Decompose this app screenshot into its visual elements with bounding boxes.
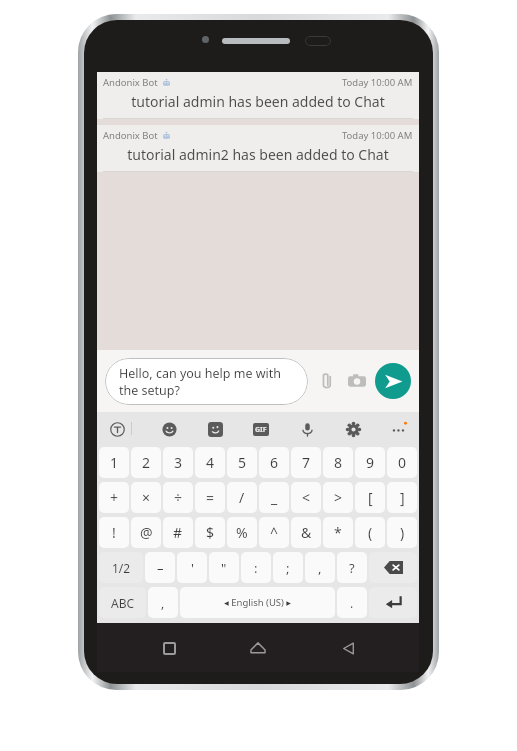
staticText: / [239, 488, 245, 507]
button[interactable]: [ [355, 482, 385, 513]
button[interactable]: 7 [291, 447, 321, 478]
staticText: 1 [110, 453, 119, 472]
button[interactable]: < [291, 482, 321, 513]
staticText: ' [191, 559, 194, 577]
button[interactable]: ] [387, 482, 417, 513]
staticText: Andonix Bot [103, 129, 158, 142]
staticText: + [110, 488, 119, 507]
button[interactable]: Camera [344, 368, 370, 394]
button[interactable]: ; [273, 552, 303, 583]
button[interactable]: Home [240, 630, 276, 666]
staticText: @ [140, 523, 153, 542]
button[interactable]: ◂ English (US) ▸ [180, 587, 335, 618]
button[interactable]: + [99, 482, 129, 513]
staticText: " [221, 559, 227, 577]
button[interactable]: ? [337, 552, 367, 583]
button[interactable]: 6 [259, 447, 289, 478]
button[interactable]: 1 [99, 447, 129, 478]
button[interactable]: Voice input [297, 419, 317, 439]
button[interactable]: 2 [131, 447, 161, 478]
staticText: ? [349, 559, 355, 577]
button[interactable]: % [227, 517, 257, 548]
button[interactable]: : [241, 552, 271, 583]
button[interactable]: × [131, 482, 161, 513]
staticText: 4 [206, 453, 215, 472]
button[interactable]: 0 [387, 447, 417, 478]
button[interactable]: # [163, 517, 193, 548]
staticText: : [254, 559, 258, 577]
staticText: 8 [334, 453, 343, 472]
staticText: 3 [174, 453, 183, 472]
button[interactable]: Backspace [369, 552, 417, 583]
button[interactable]: Enter [369, 587, 417, 618]
staticText: = [206, 488, 215, 507]
button[interactable]: = [195, 482, 225, 513]
button[interactable]: ^ [259, 517, 289, 548]
button[interactable]: _ [259, 482, 289, 513]
staticText: < [302, 488, 311, 507]
staticText: 2 [142, 453, 151, 472]
button[interactable]: . [337, 587, 367, 618]
staticText: 9 [366, 453, 375, 472]
staticText: $ [206, 523, 215, 542]
button[interactable]: " [209, 552, 239, 583]
staticText: ; [286, 559, 290, 577]
staticText: Hello, can you help me with the setup? [119, 365, 282, 398]
button[interactable]: ( [355, 517, 385, 548]
button[interactable]: – [145, 552, 175, 583]
button[interactable]: 4 [195, 447, 225, 478]
button[interactable]: Back [330, 630, 366, 666]
button[interactable]: Andonix Bot [97, 125, 419, 172]
staticText: 7 [302, 453, 311, 472]
staticText: _ [271, 488, 278, 507]
staticText: × [142, 488, 151, 507]
staticText: * [334, 523, 342, 542]
staticText: # [173, 523, 183, 542]
button[interactable]: , [148, 587, 178, 618]
button[interactable]: 9 [355, 447, 385, 478]
staticText: 5 [238, 453, 247, 472]
staticText: [ [368, 488, 373, 507]
button[interactable]: > [323, 482, 353, 513]
button[interactable]: / [227, 482, 257, 513]
button[interactable]: ' [177, 552, 207, 583]
staticText: ( [368, 523, 373, 542]
staticText: 6 [270, 453, 279, 472]
staticText: . [350, 595, 354, 611]
button[interactable]: Translate [107, 419, 127, 439]
button[interactable]: More options [389, 419, 409, 439]
button[interactable]: ! [99, 517, 129, 548]
button[interactable]: , [305, 552, 335, 583]
button[interactable]: Emoji [159, 419, 179, 439]
button[interactable]: Send [375, 363, 411, 399]
button[interactable]: 1/2 [99, 552, 143, 583]
button[interactable]: ) [387, 517, 417, 548]
button[interactable]: 3 [163, 447, 193, 478]
button[interactable]: Andonix Bot [97, 72, 419, 119]
button[interactable]: Stickers [205, 419, 225, 439]
button[interactable]: @ [131, 517, 161, 548]
button[interactable]: 5 [227, 447, 257, 478]
staticText: ) [400, 523, 405, 542]
button[interactable]: & [291, 517, 321, 548]
staticText: ÷ [174, 488, 183, 507]
staticText: ◂ English (US) ▸ [224, 596, 292, 609]
staticText: Andonix Bot [103, 76, 158, 89]
staticText: , [161, 595, 165, 611]
button[interactable]: Recent apps [151, 630, 187, 666]
button[interactable]: $ [195, 517, 225, 548]
staticText: 1/2 [112, 560, 131, 576]
button[interactable]: Hello, can you help me with the setup? [105, 358, 308, 405]
button[interactable]: Settings [343, 419, 363, 439]
button[interactable]: GIF [251, 419, 271, 439]
staticText: & [301, 523, 312, 542]
button[interactable]: ÷ [163, 482, 193, 513]
staticText: tutorial admin has been added to Chat [103, 92, 413, 111]
staticText: % [236, 523, 248, 542]
button[interactable]: Attach file [314, 368, 340, 394]
staticText: GIF [255, 425, 267, 435]
button[interactable]: 8 [323, 447, 353, 478]
button[interactable]: * [323, 517, 353, 548]
staticText: tutorial admin2 has been added to Chat [103, 145, 413, 164]
button[interactable]: ABC [99, 587, 146, 618]
